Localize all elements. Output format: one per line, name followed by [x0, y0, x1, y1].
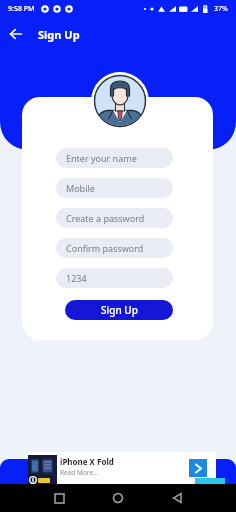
button[interactable]: Mobile [56, 178, 173, 198]
button[interactable] [189, 459, 207, 477]
staticText: 9:58 PM [8, 4, 35, 14]
staticText: Mobile [66, 182, 95, 194]
button[interactable] [163, 484, 191, 512]
staticText: Sign Up [38, 27, 80, 42]
staticText: Confirm password [66, 242, 144, 254]
staticText: Enter your name [66, 152, 137, 164]
button[interactable]: 1234 [56, 268, 173, 288]
staticText: 37% [214, 4, 228, 14]
staticText: Create a password [66, 212, 145, 224]
button[interactable]: Confirm password [56, 238, 173, 258]
button[interactable]: iPhone X Fold [28, 452, 216, 484]
button[interactable] [104, 484, 132, 512]
button[interactable]: Enter your name [56, 148, 173, 168]
staticText: Read More... [60, 468, 99, 477]
button[interactable]: Create a password [56, 208, 173, 228]
button[interactable] [0, 18, 32, 50]
staticText: iPhone X Fold [60, 456, 114, 467]
button[interactable] [45, 484, 73, 512]
staticText: Sign Up [101, 303, 138, 317]
button[interactable]: Sign Up [65, 300, 173, 320]
staticText: 1234 [66, 272, 87, 284]
